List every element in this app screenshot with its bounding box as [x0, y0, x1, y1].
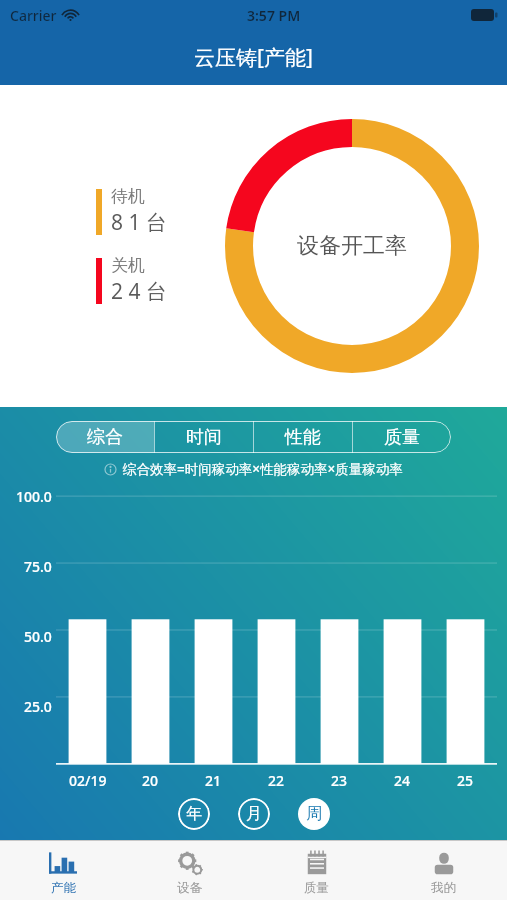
staticText: 产能 — [51, 880, 76, 896]
staticText: 云压铸[产能] — [194, 43, 313, 72]
button[interactable]: 性能 — [254, 421, 352, 453]
staticText: 100.0 — [16, 487, 52, 506]
button[interactable]: 我的 — [380, 841, 507, 900]
button[interactable]: 综合 — [56, 421, 154, 453]
staticText: 时间 — [186, 426, 222, 449]
staticText: 8 1 台 — [111, 208, 167, 237]
staticText: 75.0 — [24, 557, 52, 576]
button[interactable]: 产能 — [0, 841, 126, 900]
staticText: 综合 — [87, 426, 123, 449]
button[interactable]: 质量 — [353, 421, 451, 453]
staticText: 设备 — [177, 880, 202, 896]
staticText: Carrier — [10, 6, 57, 25]
staticText: 我的 — [431, 880, 456, 896]
button[interactable]: 设备 — [126, 841, 253, 900]
button[interactable]: 周 — [298, 798, 330, 830]
button[interactable]: 时间 — [155, 421, 253, 453]
staticText: 综合效率=时间稼动率×性能稼动率×质量稼动率 — [123, 460, 403, 478]
staticText: 2 4 台 — [111, 277, 167, 306]
other: 产能 — [49, 849, 77, 877]
other: 设备 — [176, 849, 204, 877]
staticText: 02/19 — [69, 771, 107, 790]
staticText: 22 — [268, 771, 285, 790]
staticText: 3:57 PM — [247, 6, 301, 25]
staticText: 关机 — [111, 255, 145, 276]
staticText: 24 — [394, 771, 411, 790]
staticText: 23 — [331, 771, 348, 790]
other: 质量 — [303, 849, 331, 877]
staticText: 25.0 — [24, 697, 52, 716]
staticText: 20 — [142, 771, 159, 790]
staticText: 21 — [205, 771, 222, 790]
button[interactable]: 月 — [238, 798, 270, 830]
staticText: 设备开工率 — [297, 232, 407, 260]
button[interactable]: 年 — [178, 798, 210, 830]
other: 我的 — [430, 849, 458, 877]
staticText: 待机 — [111, 186, 145, 207]
button[interactable]: 质量 — [253, 841, 380, 900]
staticText: 月 — [246, 804, 262, 824]
staticText: 周 — [306, 804, 322, 824]
staticText: 质量 — [304, 880, 329, 896]
staticText: 质量 — [384, 426, 420, 449]
staticText: 50.0 — [24, 627, 52, 646]
staticText: 年 — [186, 804, 202, 824]
staticText: 25 — [457, 771, 474, 790]
staticText: 性能 — [285, 426, 321, 449]
